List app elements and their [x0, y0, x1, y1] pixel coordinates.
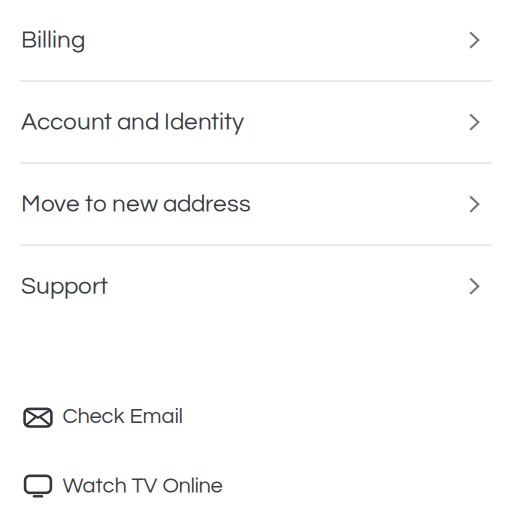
button[interactable]: Support — [0, 246, 522, 326]
staticText: Account and Identity — [21, 110, 244, 135]
button[interactable]: Account and Identity — [0, 82, 522, 162]
button[interactable]: Watch TV Online — [0, 463, 522, 509]
button[interactable]: Check Email — [0, 393, 522, 439]
staticText: Billing — [21, 28, 85, 53]
button[interactable]: Move to new address — [0, 164, 522, 244]
staticText: Watch TV Online — [62, 474, 222, 497]
staticText: Support — [21, 274, 108, 299]
staticText: Check Email — [62, 405, 182, 427]
button[interactable]: Billing — [0, 0, 522, 80]
staticText: Move to new address — [21, 192, 251, 217]
